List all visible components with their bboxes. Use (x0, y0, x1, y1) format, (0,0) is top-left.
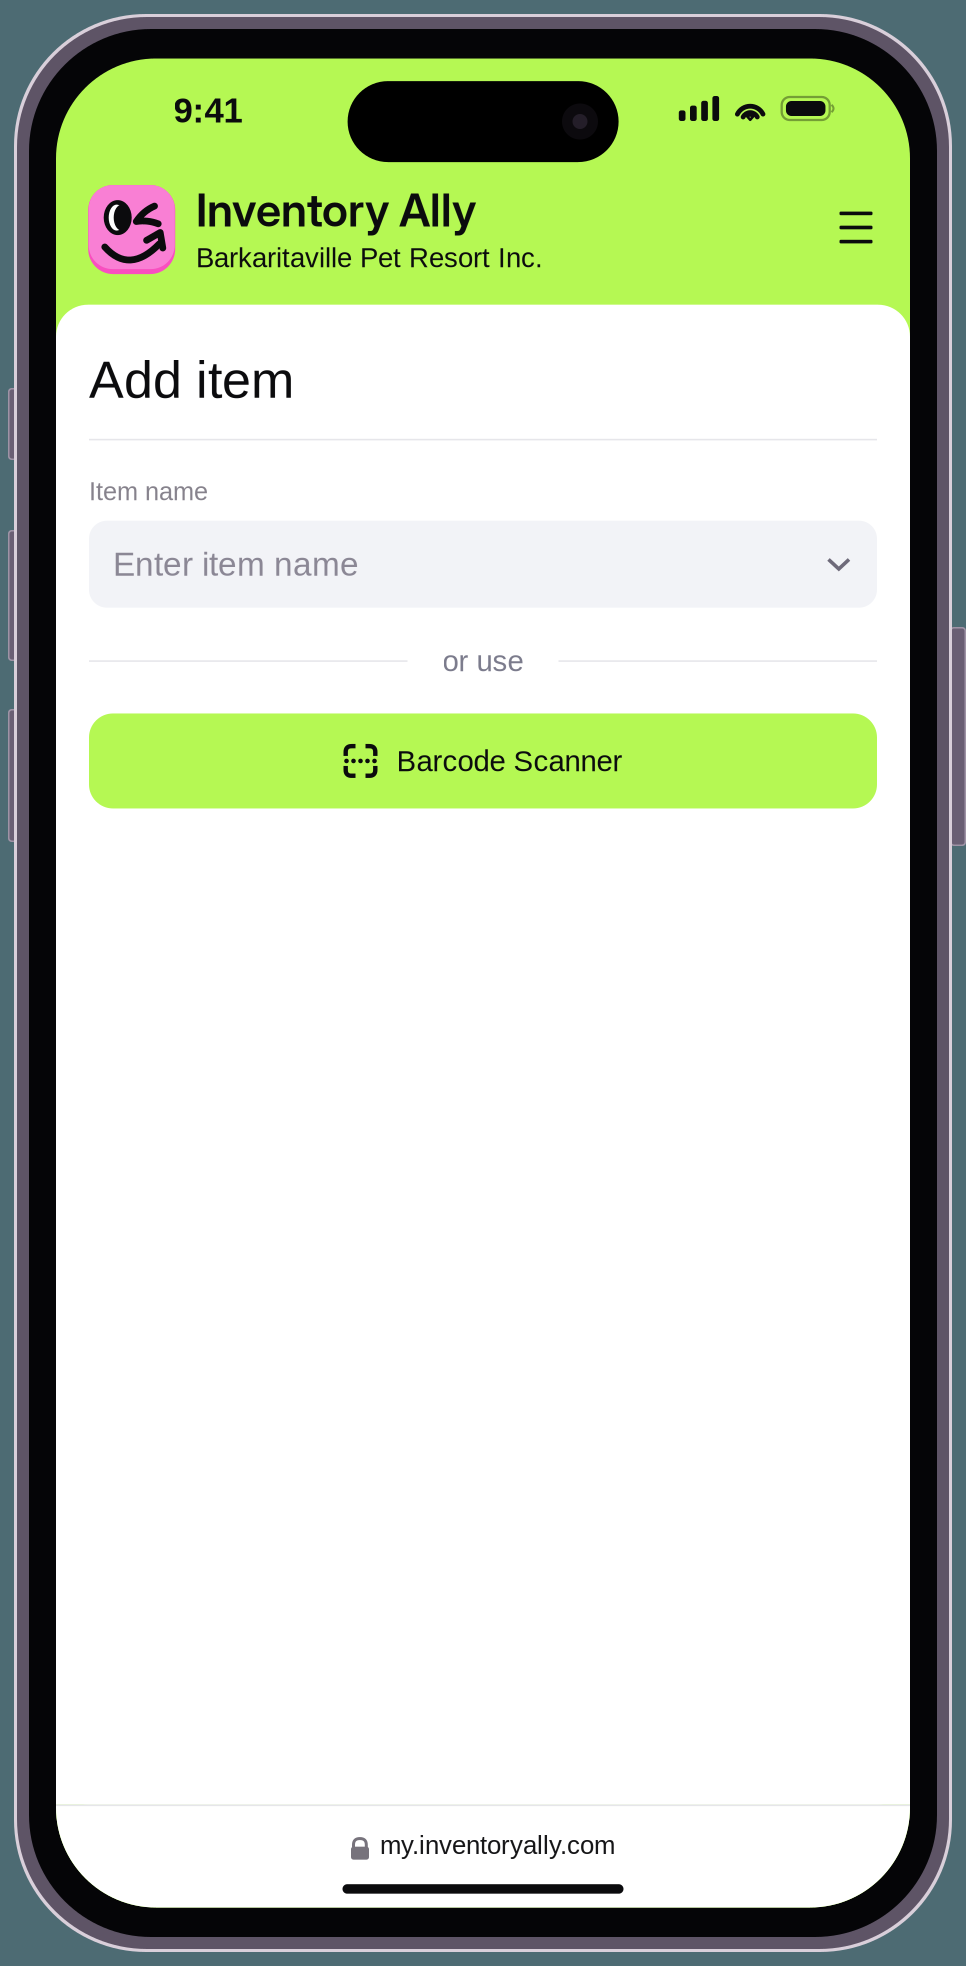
button[interactable]: Barcode Scanner (89, 713, 877, 808)
staticText: Barkaritaville Pet Resort Inc. (196, 242, 543, 273)
staticText: or use (442, 645, 523, 677)
staticText: Enter item name (113, 546, 359, 583)
button[interactable]: Menu (823, 194, 889, 260)
staticText: Inventory Ally (196, 182, 476, 237)
button[interactable]: Enter item name (89, 521, 877, 608)
staticText: Item name (89, 477, 208, 506)
staticText: Barcode Scanner (396, 745, 622, 777)
staticText: 9:41 (173, 91, 242, 130)
staticText: Add item (89, 351, 294, 409)
staticText: my.inventoryally.com (380, 1831, 615, 1859)
